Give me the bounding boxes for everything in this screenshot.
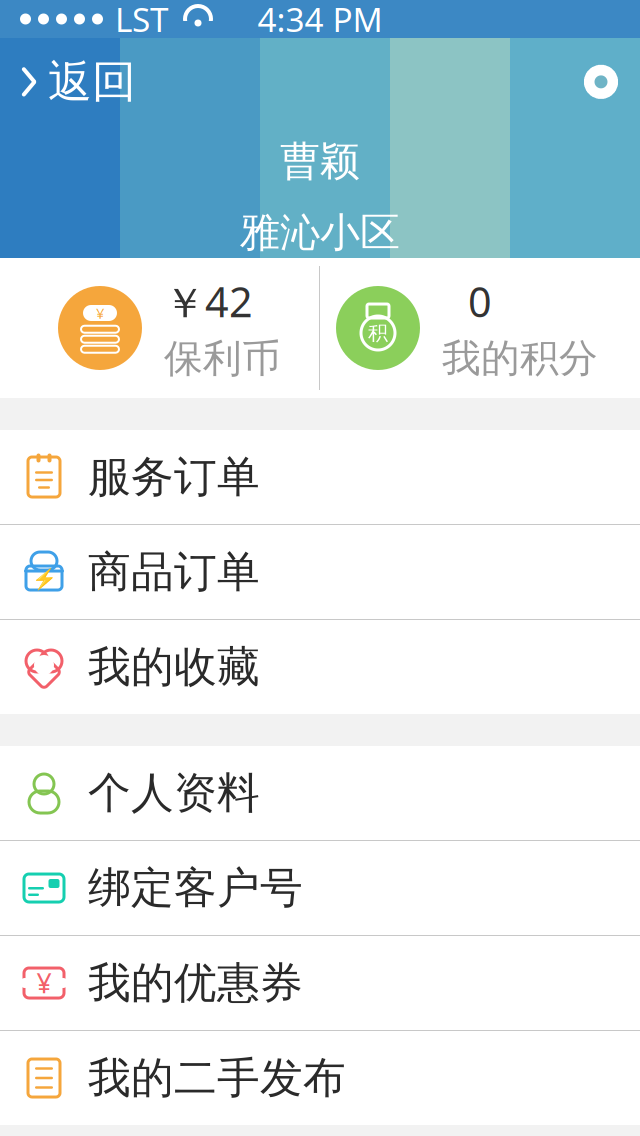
- staticText: 绑定客户号: [88, 862, 303, 914]
- button[interactable]: 设置: [562, 49, 640, 115]
- staticText: 个人资料: [88, 767, 260, 819]
- staticText: ¥: [36, 965, 51, 1001]
- staticText: 我的优惠券: [88, 957, 303, 1009]
- staticText: ￥42: [164, 274, 253, 329]
- staticText: 4:34 PM: [257, 0, 382, 41]
- staticText: 积: [368, 321, 388, 345]
- staticText: 服务订单: [88, 451, 260, 503]
- button[interactable]: ⚡: [0, 525, 640, 619]
- staticText: 雅沁小区: [240, 208, 400, 257]
- staticText: 保利币: [164, 335, 281, 382]
- staticText: LST: [115, 0, 169, 41]
- staticText: 商品订单: [88, 546, 260, 598]
- button[interactable]: ¥: [0, 936, 640, 1030]
- staticText: 返回: [48, 55, 136, 109]
- button[interactable]: 个人资料: [0, 746, 640, 840]
- staticText: ⚡: [31, 568, 56, 590]
- staticText: ¥: [96, 303, 104, 323]
- button[interactable]: 服务订单: [0, 430, 640, 524]
- staticText: 0: [468, 274, 492, 329]
- button[interactable]: 我的收藏: [0, 620, 640, 714]
- staticText: 曹颖: [280, 137, 360, 186]
- button[interactable]: ¥: [0, 258, 319, 398]
- staticText: 我的积分: [442, 335, 598, 382]
- button[interactable]: 我的二手发布: [0, 1031, 640, 1125]
- button[interactable]: 积: [320, 258, 640, 398]
- staticText: 我的收藏: [88, 641, 260, 693]
- button[interactable]: 绑定客户号: [0, 841, 640, 935]
- button[interactable]: 返回: [0, 41, 156, 123]
- staticText: 我的二手发布: [88, 1052, 346, 1104]
